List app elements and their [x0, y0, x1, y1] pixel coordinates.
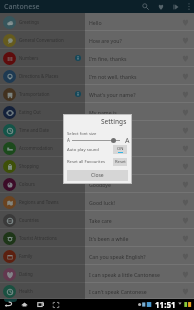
button[interactable]: See you later: [85, 139, 194, 157]
staticText: I can speak a little Cantonese: [89, 271, 180, 278]
staticText: See you later: [89, 145, 180, 152]
staticText: Numbers: [19, 55, 74, 61]
button[interactable]: I can't speak Cantonese: [85, 283, 194, 299]
button[interactable]: Add to favourites: [180, 215, 191, 226]
staticText: Nice to meet you: [89, 127, 180, 134]
staticText: How are you?: [89, 37, 180, 44]
button[interactable]: How are you?: [85, 31, 194, 49]
staticText: Can you speak English?: [89, 253, 180, 260]
button[interactable]: Info: [74, 90, 82, 98]
button[interactable]: More options: [183, 0, 194, 13]
staticText: Settings: [101, 117, 127, 126]
staticText: Close: [91, 172, 104, 179]
button[interactable]: Greetings: [0, 13, 85, 31]
button[interactable]: Eating Out: [0, 103, 85, 121]
button[interactable]: Colours: [0, 175, 85, 193]
staticText: Colours: [19, 181, 82, 187]
button[interactable]: Good morning: [85, 157, 194, 175]
staticText: Hello: [89, 19, 180, 26]
staticText: Auto play sound: [67, 147, 99, 153]
button[interactable]: Nice to meet you: [85, 121, 194, 139]
button[interactable]: General Conversation: [0, 31, 85, 49]
staticText: Directions & Places: [19, 73, 82, 79]
staticText: Reset: [115, 159, 126, 165]
button[interactable]: Add to favourites: [180, 71, 191, 82]
button[interactable]: Close: [67, 170, 128, 181]
staticText: Shopping: [19, 163, 82, 169]
staticText: I'm not well, thanks: [89, 73, 180, 80]
button[interactable]: Transportation: [0, 85, 85, 103]
button[interactable]: Tourist Attractions: [0, 229, 85, 247]
staticText: A: [125, 136, 130, 144]
button[interactable]: Good luck!: [85, 193, 194, 211]
button[interactable]: Recent apps: [32, 299, 48, 310]
staticText: 11:51: [155, 299, 176, 310]
staticText: Take care: [89, 217, 180, 224]
button[interactable]: Search: [138, 0, 153, 13]
button[interactable]: Family: [0, 247, 85, 265]
staticText: Accommodation: [19, 145, 82, 151]
button[interactable]: Time and Date: [0, 121, 85, 139]
staticText: Cantonese: [4, 2, 40, 12]
staticText: Transportation: [19, 91, 74, 97]
button[interactable]: Play all: [168, 0, 183, 13]
button[interactable]: Add to favourites: [180, 35, 191, 46]
button[interactable]: I'm not well, thanks: [85, 67, 194, 85]
staticText: Health: [19, 288, 82, 294]
staticText: Countries: [19, 217, 82, 223]
button[interactable]: Back: [0, 299, 16, 310]
staticText: Time and Date: [19, 127, 82, 133]
button[interactable]: Directions & Places: [0, 67, 85, 85]
staticText: What's your name?: [89, 91, 180, 98]
button[interactable]: Home: [16, 299, 32, 310]
staticText: Select font size: [67, 131, 97, 137]
button[interactable]: My name is ...: [85, 103, 194, 121]
staticText: Good luck!: [89, 199, 180, 206]
staticText: Reset all Favourites: [67, 159, 105, 165]
button[interactable]: Add to favourites: [180, 179, 191, 190]
button[interactable]: Goodbye: [85, 175, 194, 193]
button[interactable]: ON: [113, 145, 127, 154]
button[interactable]: It's been a while: [85, 229, 194, 247]
staticText: ON: [117, 146, 124, 152]
button[interactable]: I can speak a little Cantonese: [85, 265, 194, 283]
button[interactable]: Add to favourites: [180, 233, 191, 244]
button[interactable]: Accommodation: [0, 139, 85, 157]
button[interactable]: Add to favourites: [180, 125, 191, 136]
button[interactable]: Add to favourites: [180, 17, 191, 28]
button[interactable]: Add to favourites: [180, 269, 191, 280]
button[interactable]: Dating: [0, 265, 85, 283]
button[interactable]: Hello: [85, 13, 194, 31]
button[interactable]: Screenshot: [48, 299, 64, 310]
button[interactable]: Health: [0, 283, 85, 299]
staticText: Family: [19, 253, 82, 259]
staticText: I'm fine, thanks: [89, 55, 180, 62]
button[interactable]: Regions and Towns: [0, 193, 85, 211]
button[interactable]: Favourites: [153, 0, 168, 13]
staticText: I can't speak Cantonese: [89, 288, 180, 295]
button[interactable]: Add to favourites: [180, 197, 191, 208]
button[interactable]: Shopping: [0, 157, 85, 175]
button[interactable]: Add to favourites: [180, 161, 191, 172]
staticText: Dating: [19, 271, 82, 277]
button[interactable]: Take care: [85, 211, 194, 229]
button[interactable]: Numbers: [0, 49, 85, 67]
button[interactable]: Reset: [113, 158, 127, 166]
button[interactable]: Can you speak English?: [85, 247, 194, 265]
staticText: Regions and Towns: [19, 199, 82, 205]
button[interactable]: Add to favourites: [180, 89, 191, 100]
button[interactable]: Add to favourites: [180, 107, 191, 118]
button[interactable]: What's your name?: [85, 85, 194, 103]
button[interactable]: Add to favourites: [180, 53, 191, 64]
button[interactable]: Info: [74, 54, 82, 62]
staticText: Greetings: [19, 19, 82, 25]
button[interactable]: Add to favourites: [180, 143, 191, 154]
button[interactable]: Add to favourites: [180, 286, 191, 297]
button[interactable]: I'm fine, thanks: [85, 49, 194, 67]
button[interactable]: Add to favourites: [180, 251, 191, 262]
button[interactable]: Countries: [0, 211, 85, 229]
staticText: It's been a while: [89, 235, 180, 242]
staticText: Eating Out: [19, 109, 82, 115]
staticText: Tourist Attractions: [19, 235, 82, 241]
staticText: General Conversation: [19, 37, 82, 43]
